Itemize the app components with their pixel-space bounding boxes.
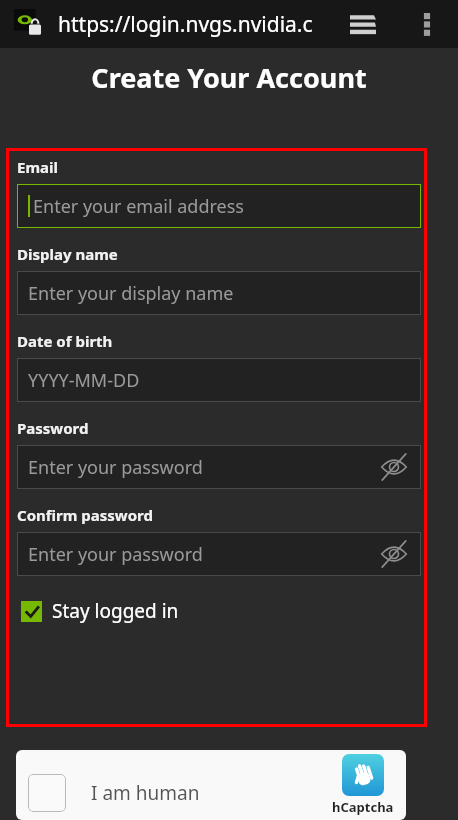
button[interactable]: Site information bbox=[14, 9, 44, 39]
staticText: Password bbox=[17, 418, 89, 438]
staticText: hCaptcha bbox=[332, 798, 394, 816]
staticText: Email bbox=[17, 157, 58, 177]
staticText: Enter your display name bbox=[28, 281, 234, 306]
button[interactable]: Stay logged in bbox=[17, 598, 421, 624]
staticText: Date of birth bbox=[17, 331, 113, 351]
button[interactable]: Enter your display name bbox=[17, 271, 421, 315]
button[interactable]: Enter your password bbox=[17, 445, 421, 489]
button[interactable]: Show password bbox=[377, 450, 411, 484]
staticText: Enter your password bbox=[28, 455, 203, 480]
staticText: YYYY-MM-DD bbox=[28, 368, 140, 393]
staticText: Display name bbox=[17, 244, 118, 264]
staticText: https://login.nvgs.nvidia.c bbox=[58, 10, 313, 39]
button[interactable] bbox=[28, 774, 66, 812]
staticText: Enter your email address bbox=[33, 194, 244, 219]
button[interactable]: More options bbox=[410, 7, 444, 41]
staticText: I am human bbox=[91, 780, 200, 806]
staticText: Enter your password bbox=[28, 542, 203, 567]
button[interactable]: Show password bbox=[377, 537, 411, 571]
button[interactable]: Tabs bbox=[346, 7, 380, 41]
button[interactable]: I am human bbox=[16, 750, 406, 820]
staticText: Create Your Account bbox=[91, 59, 367, 96]
button[interactable]: Enter your password bbox=[17, 532, 421, 576]
button[interactable]: Enter your email address bbox=[17, 184, 421, 228]
button[interactable]: YYYY-MM-DD bbox=[17, 358, 421, 402]
staticText: Confirm password bbox=[17, 505, 153, 525]
staticText: Stay logged in bbox=[52, 598, 179, 624]
